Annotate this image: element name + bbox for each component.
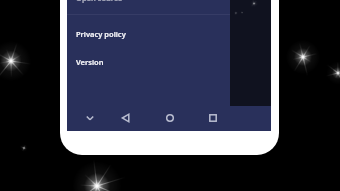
button[interactable]: Privacy policy <box>67 20 271 48</box>
staticText: Open source <box>76 0 123 3</box>
button[interactable]: Recents <box>205 110 221 126</box>
button[interactable]: Open source <box>67 0 271 14</box>
staticText: Privacy policy <box>76 29 126 39</box>
button[interactable]: Hide keyboard <box>82 110 98 126</box>
button[interactable]: Version <box>67 48 271 76</box>
button[interactable]: Home <box>162 110 178 126</box>
staticText: Version <box>76 57 104 67</box>
button[interactable]: Back <box>118 110 134 126</box>
